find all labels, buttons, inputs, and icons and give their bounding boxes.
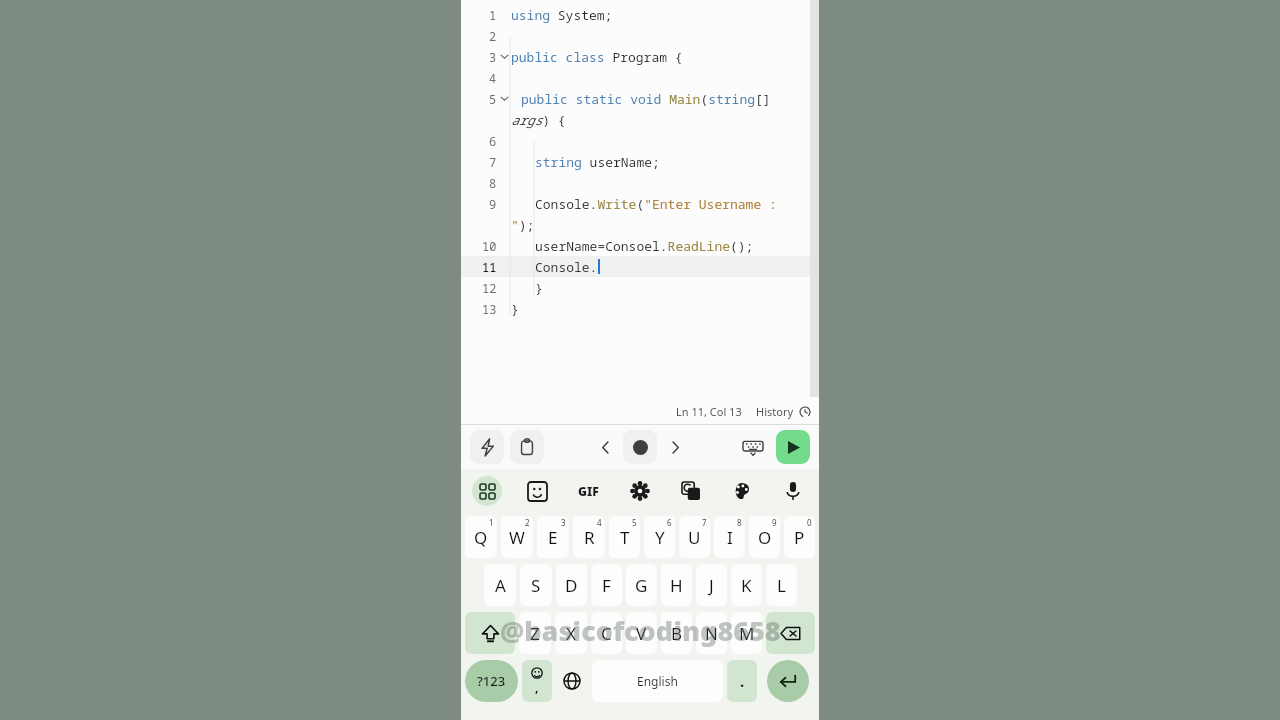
button[interactable]: L [766, 564, 797, 606]
button[interactable]: O [749, 516, 780, 558]
staticText: 4 [489, 70, 497, 86]
button[interactable]: Apps [461, 469, 512, 513]
staticText: W [509, 526, 525, 549]
button[interactable]: B [661, 612, 692, 654]
staticText: 1 [489, 517, 494, 528]
staticText: X [566, 622, 576, 645]
staticText: public class Program { [511, 48, 683, 66]
staticText: 2 [525, 517, 530, 528]
staticText: 9 [489, 196, 497, 212]
staticText: "); [511, 216, 535, 234]
button[interactable]: Shift [465, 612, 515, 654]
staticText: userName=Consoel.ReadLine(); [535, 237, 754, 255]
button[interactable]: Backspace [766, 612, 815, 654]
button[interactable]: T [609, 516, 640, 558]
staticText: C [601, 622, 612, 645]
button[interactable]: Next [661, 433, 689, 461]
staticText: } [511, 300, 519, 318]
staticText: S [531, 574, 541, 597]
staticText: Q [474, 526, 488, 549]
staticText: 11 [482, 259, 497, 275]
button[interactable]: Record [623, 430, 657, 464]
staticText: 4 [597, 517, 602, 528]
button[interactable]: English [592, 660, 723, 702]
staticText: F [602, 574, 611, 597]
staticText: English [637, 673, 678, 689]
button[interactable]: I [714, 516, 745, 558]
button[interactable]: W [501, 516, 533, 558]
staticText: 8 [737, 517, 742, 528]
staticText: 12 [482, 280, 497, 296]
staticText: P [794, 526, 805, 549]
button[interactable]: GIF [563, 469, 614, 513]
button[interactable]: Paste [510, 430, 544, 464]
button[interactable]: N [696, 612, 727, 654]
button[interactable]: Previous [591, 433, 619, 461]
staticText: ?123 [477, 672, 506, 690]
staticText: 0 [807, 517, 812, 528]
button[interactable]: D [556, 564, 587, 606]
button[interactable]: Voice input [767, 469, 818, 513]
button[interactable]: Stickers [512, 469, 563, 513]
staticText: Console.Write("Enter Username : [535, 195, 777, 213]
staticText: Y [655, 526, 665, 549]
staticText: U [688, 526, 701, 549]
button[interactable]: Translate [665, 469, 716, 513]
staticText: J [709, 574, 714, 597]
staticText: T [620, 526, 630, 549]
button[interactable]: Keyboard [737, 431, 769, 463]
staticText: Console. [535, 258, 598, 276]
staticText: G [635, 574, 648, 597]
staticText: 8 [489, 175, 497, 191]
button[interactable]: Change language [556, 660, 588, 702]
button[interactable]: Y [644, 516, 675, 558]
button[interactable]: P [784, 516, 815, 558]
button[interactable]: U [679, 516, 710, 558]
button[interactable]: Q [465, 516, 497, 558]
staticText: 3 [489, 49, 497, 65]
button[interactable]: History [756, 404, 811, 419]
button[interactable]: Emoji and comma [522, 660, 552, 702]
button[interactable]: Enter [767, 660, 809, 702]
staticText: } [535, 279, 543, 297]
staticText: . [740, 671, 745, 691]
button[interactable]: Format [470, 430, 504, 464]
staticText: N [705, 622, 718, 645]
button[interactable]: Run [776, 430, 810, 464]
staticText: 10 [482, 238, 497, 254]
button[interactable]: X [555, 612, 587, 654]
staticText: 13 [482, 301, 497, 317]
staticText: args) { [511, 111, 566, 129]
button[interactable]: Settings [614, 469, 665, 513]
staticText: D [565, 574, 578, 597]
staticText: History [756, 404, 794, 419]
button[interactable]: Period [727, 660, 757, 702]
button[interactable]: G [626, 564, 657, 606]
staticText: 6 [667, 517, 672, 528]
button[interactable]: ?123 [465, 660, 518, 702]
button[interactable]: Z [519, 612, 551, 654]
button[interactable]: M [731, 612, 762, 654]
staticText: Ln 11, Col 13 [676, 404, 742, 419]
button[interactable]: A [484, 564, 516, 606]
staticText: GIF [578, 483, 599, 499]
button[interactable]: Theme [716, 469, 767, 513]
staticText: V [636, 622, 647, 645]
button[interactable]: S [520, 564, 552, 606]
other: History [799, 406, 811, 418]
button[interactable]: C [591, 612, 622, 654]
button[interactable]: J [696, 564, 727, 606]
button[interactable]: K [731, 564, 762, 606]
button[interactable]: R [573, 516, 605, 558]
staticText: public static void Main(string[] [521, 90, 771, 108]
button[interactable]: E [537, 516, 569, 558]
staticText: 5 [489, 91, 497, 107]
staticText: A [495, 574, 506, 597]
button[interactable]: H [661, 564, 692, 606]
button[interactable]: V [626, 612, 657, 654]
staticText: M [739, 622, 755, 645]
staticText: E [548, 526, 558, 549]
staticText: 3 [561, 517, 566, 528]
button[interactable]: F [591, 564, 622, 606]
staticText: 5 [632, 517, 637, 528]
